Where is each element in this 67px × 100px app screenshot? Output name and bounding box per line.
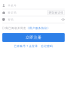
button[interactable]: Show password (61, 18, 65, 21)
button[interactable]: 《用户服务协议》 (26, 26, 50, 30)
staticText: 密码 (8, 18, 14, 21)
button[interactable]: 我已阅读并同意 (2, 26, 26, 30)
button[interactable]: 立即注册 (2, 33, 65, 42)
staticText: 我已阅读并同意 (5, 26, 26, 30)
button[interactable]: 忘记密码 (41, 44, 53, 48)
button[interactable]: 已有账号？去登录 (14, 44, 38, 48)
button[interactable]: 获取验证码 (47, 10, 65, 14)
staticText: 验证码 (8, 11, 17, 14)
staticText: 忘记密码 (41, 44, 53, 48)
staticText: 《用户服务协议》 (26, 26, 50, 30)
staticText: 立即注册 (25, 35, 41, 40)
staticText: 已有账号？去登录 (14, 44, 38, 48)
staticText: 获取验证码 (48, 11, 63, 14)
staticText: 手机号 (8, 4, 17, 7)
